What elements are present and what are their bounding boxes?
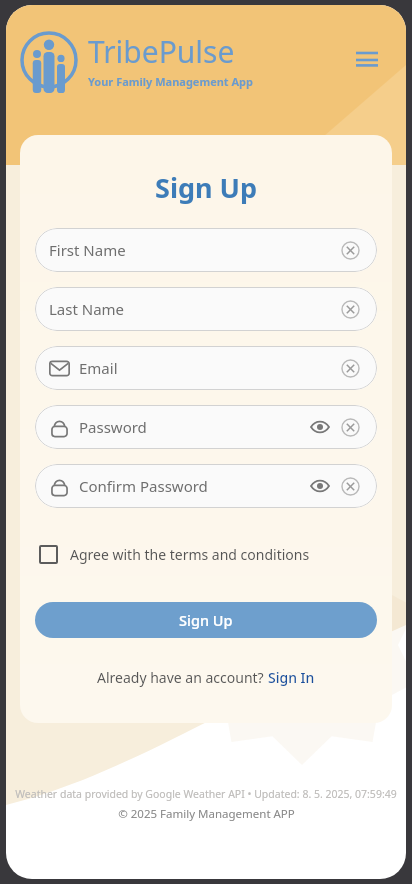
- staticText: First Name: [49, 240, 337, 260]
- button[interactable]: Password: [35, 405, 377, 449]
- staticText: Agree with the terms and conditions: [70, 545, 310, 564]
- button[interactable]: Email: [35, 346, 377, 390]
- button[interactable]: Clear Confirm Password: [337, 473, 363, 499]
- button[interactable]: Last Name: [35, 287, 377, 331]
- button[interactable]: Clear Email: [337, 355, 363, 381]
- staticText: Sign In: [268, 668, 315, 687]
- button[interactable]: Show password: [307, 414, 333, 440]
- staticText: Weather data provided by Google Weather …: [15, 787, 397, 801]
- staticText: Your Family Management App: [88, 74, 254, 89]
- button[interactable]: Agree with the terms and conditions: [35, 543, 377, 566]
- staticText: Sign Up: [179, 610, 233, 630]
- button[interactable]: Show password: [307, 473, 333, 499]
- button[interactable]: Clear Password: [337, 414, 363, 440]
- staticText: TribePulse: [88, 31, 235, 72]
- button[interactable]: Sign Up: [35, 602, 377, 638]
- staticText: Last Name: [49, 299, 337, 319]
- staticText: Email: [79, 358, 337, 378]
- staticText: Sign Up: [155, 169, 258, 206]
- staticText: Already have an account?: [97, 668, 268, 687]
- button[interactable]: Clear Last Name: [337, 296, 363, 322]
- button[interactable]: Clear First Name: [337, 237, 363, 263]
- staticText: © 2025 Family Management APP: [118, 806, 295, 822]
- button[interactable]: Confirm Password: [35, 464, 377, 508]
- button[interactable]: Menu: [350, 43, 384, 77]
- button[interactable]: First Name: [35, 228, 377, 272]
- staticText: Password: [79, 417, 307, 437]
- button[interactable]: Sign In: [268, 668, 315, 687]
- staticText: Confirm Password: [79, 476, 307, 496]
